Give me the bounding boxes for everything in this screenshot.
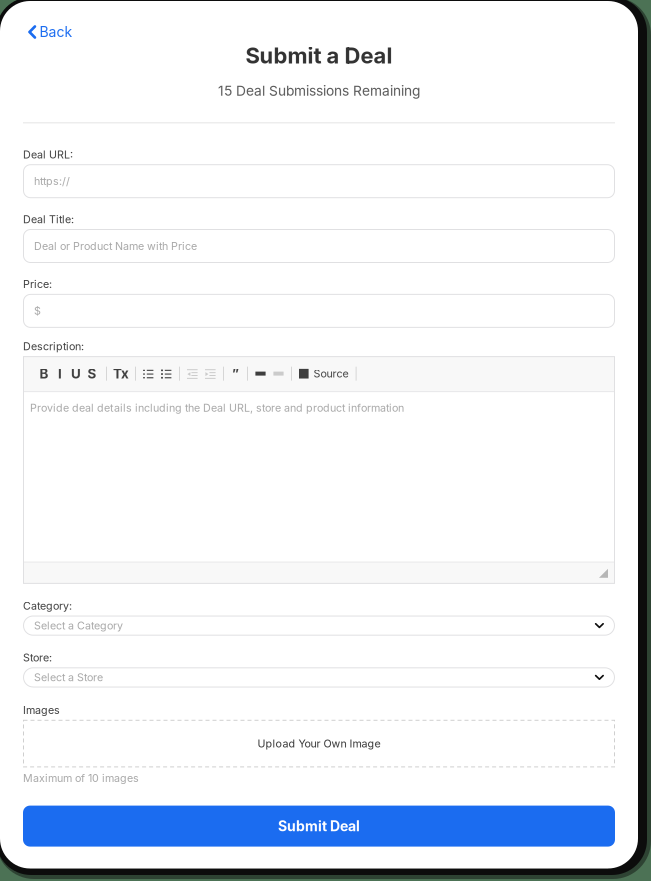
button[interactable]: Source: [299, 367, 349, 380]
button[interactable]: Italic: [52, 364, 68, 384]
staticText: Store:: [23, 651, 52, 664]
staticText: Deal or Product Name with Price: [34, 239, 197, 252]
staticText: S: [87, 366, 96, 382]
button[interactable]: https://: [23, 164, 615, 198]
button[interactable]: Underline: [68, 364, 84, 384]
staticText: I: [58, 366, 62, 382]
button[interactable]: Back: [0, 23, 86, 40]
staticText: Submit a Deal: [245, 42, 392, 69]
button[interactable]: Bold: [36, 364, 52, 384]
button[interactable]: Upload Your Own Image: [23, 720, 615, 767]
button[interactable]: Numbered list: [143, 368, 154, 379]
staticText: Back: [39, 23, 72, 40]
staticText: Select a Store: [34, 671, 103, 684]
staticText: Source: [314, 367, 349, 380]
staticText: Select a Category: [34, 619, 123, 632]
button[interactable]: Block quote: [230, 364, 241, 384]
button[interactable]: Strikethrough: [84, 364, 100, 384]
button[interactable]: Submit Deal: [23, 806, 615, 847]
button[interactable]: Unlink: [273, 368, 284, 379]
staticText: 15 Deal Submissions Remaining: [218, 82, 420, 99]
staticText: Tx: [113, 366, 129, 382]
staticText: Upload Your Own Image: [257, 737, 380, 750]
staticText: Images: [23, 704, 60, 716]
staticText: Price:: [23, 278, 52, 291]
staticText: $: [34, 304, 41, 317]
staticText: ”: [232, 366, 239, 382]
staticText: Description:: [23, 340, 84, 353]
button[interactable]: Select a Category: [23, 615, 615, 636]
staticText: Maximum of 10 images: [23, 771, 139, 784]
staticText: Category:: [23, 599, 72, 612]
staticText: Deal Title:: [23, 213, 74, 226]
staticText: Submit Deal: [278, 818, 360, 834]
button[interactable]: Remove format: [113, 364, 129, 384]
staticText: U: [71, 366, 81, 382]
staticText: B: [39, 366, 48, 382]
button[interactable]: $: [23, 294, 615, 328]
button[interactable]: Bulleted list: [161, 368, 172, 379]
button[interactable]: Decrease indent: [187, 368, 198, 379]
button[interactable]: Link: [255, 368, 266, 379]
staticText: Deal URL:: [23, 148, 73, 161]
staticText: https://: [34, 175, 70, 188]
staticText: Provide deal details including the Deal …: [30, 401, 404, 414]
button[interactable]: Increase indent: [205, 368, 216, 379]
button[interactable]: Select a Store: [23, 667, 615, 687]
button[interactable]: Deal or Product Name with Price: [23, 229, 615, 263]
